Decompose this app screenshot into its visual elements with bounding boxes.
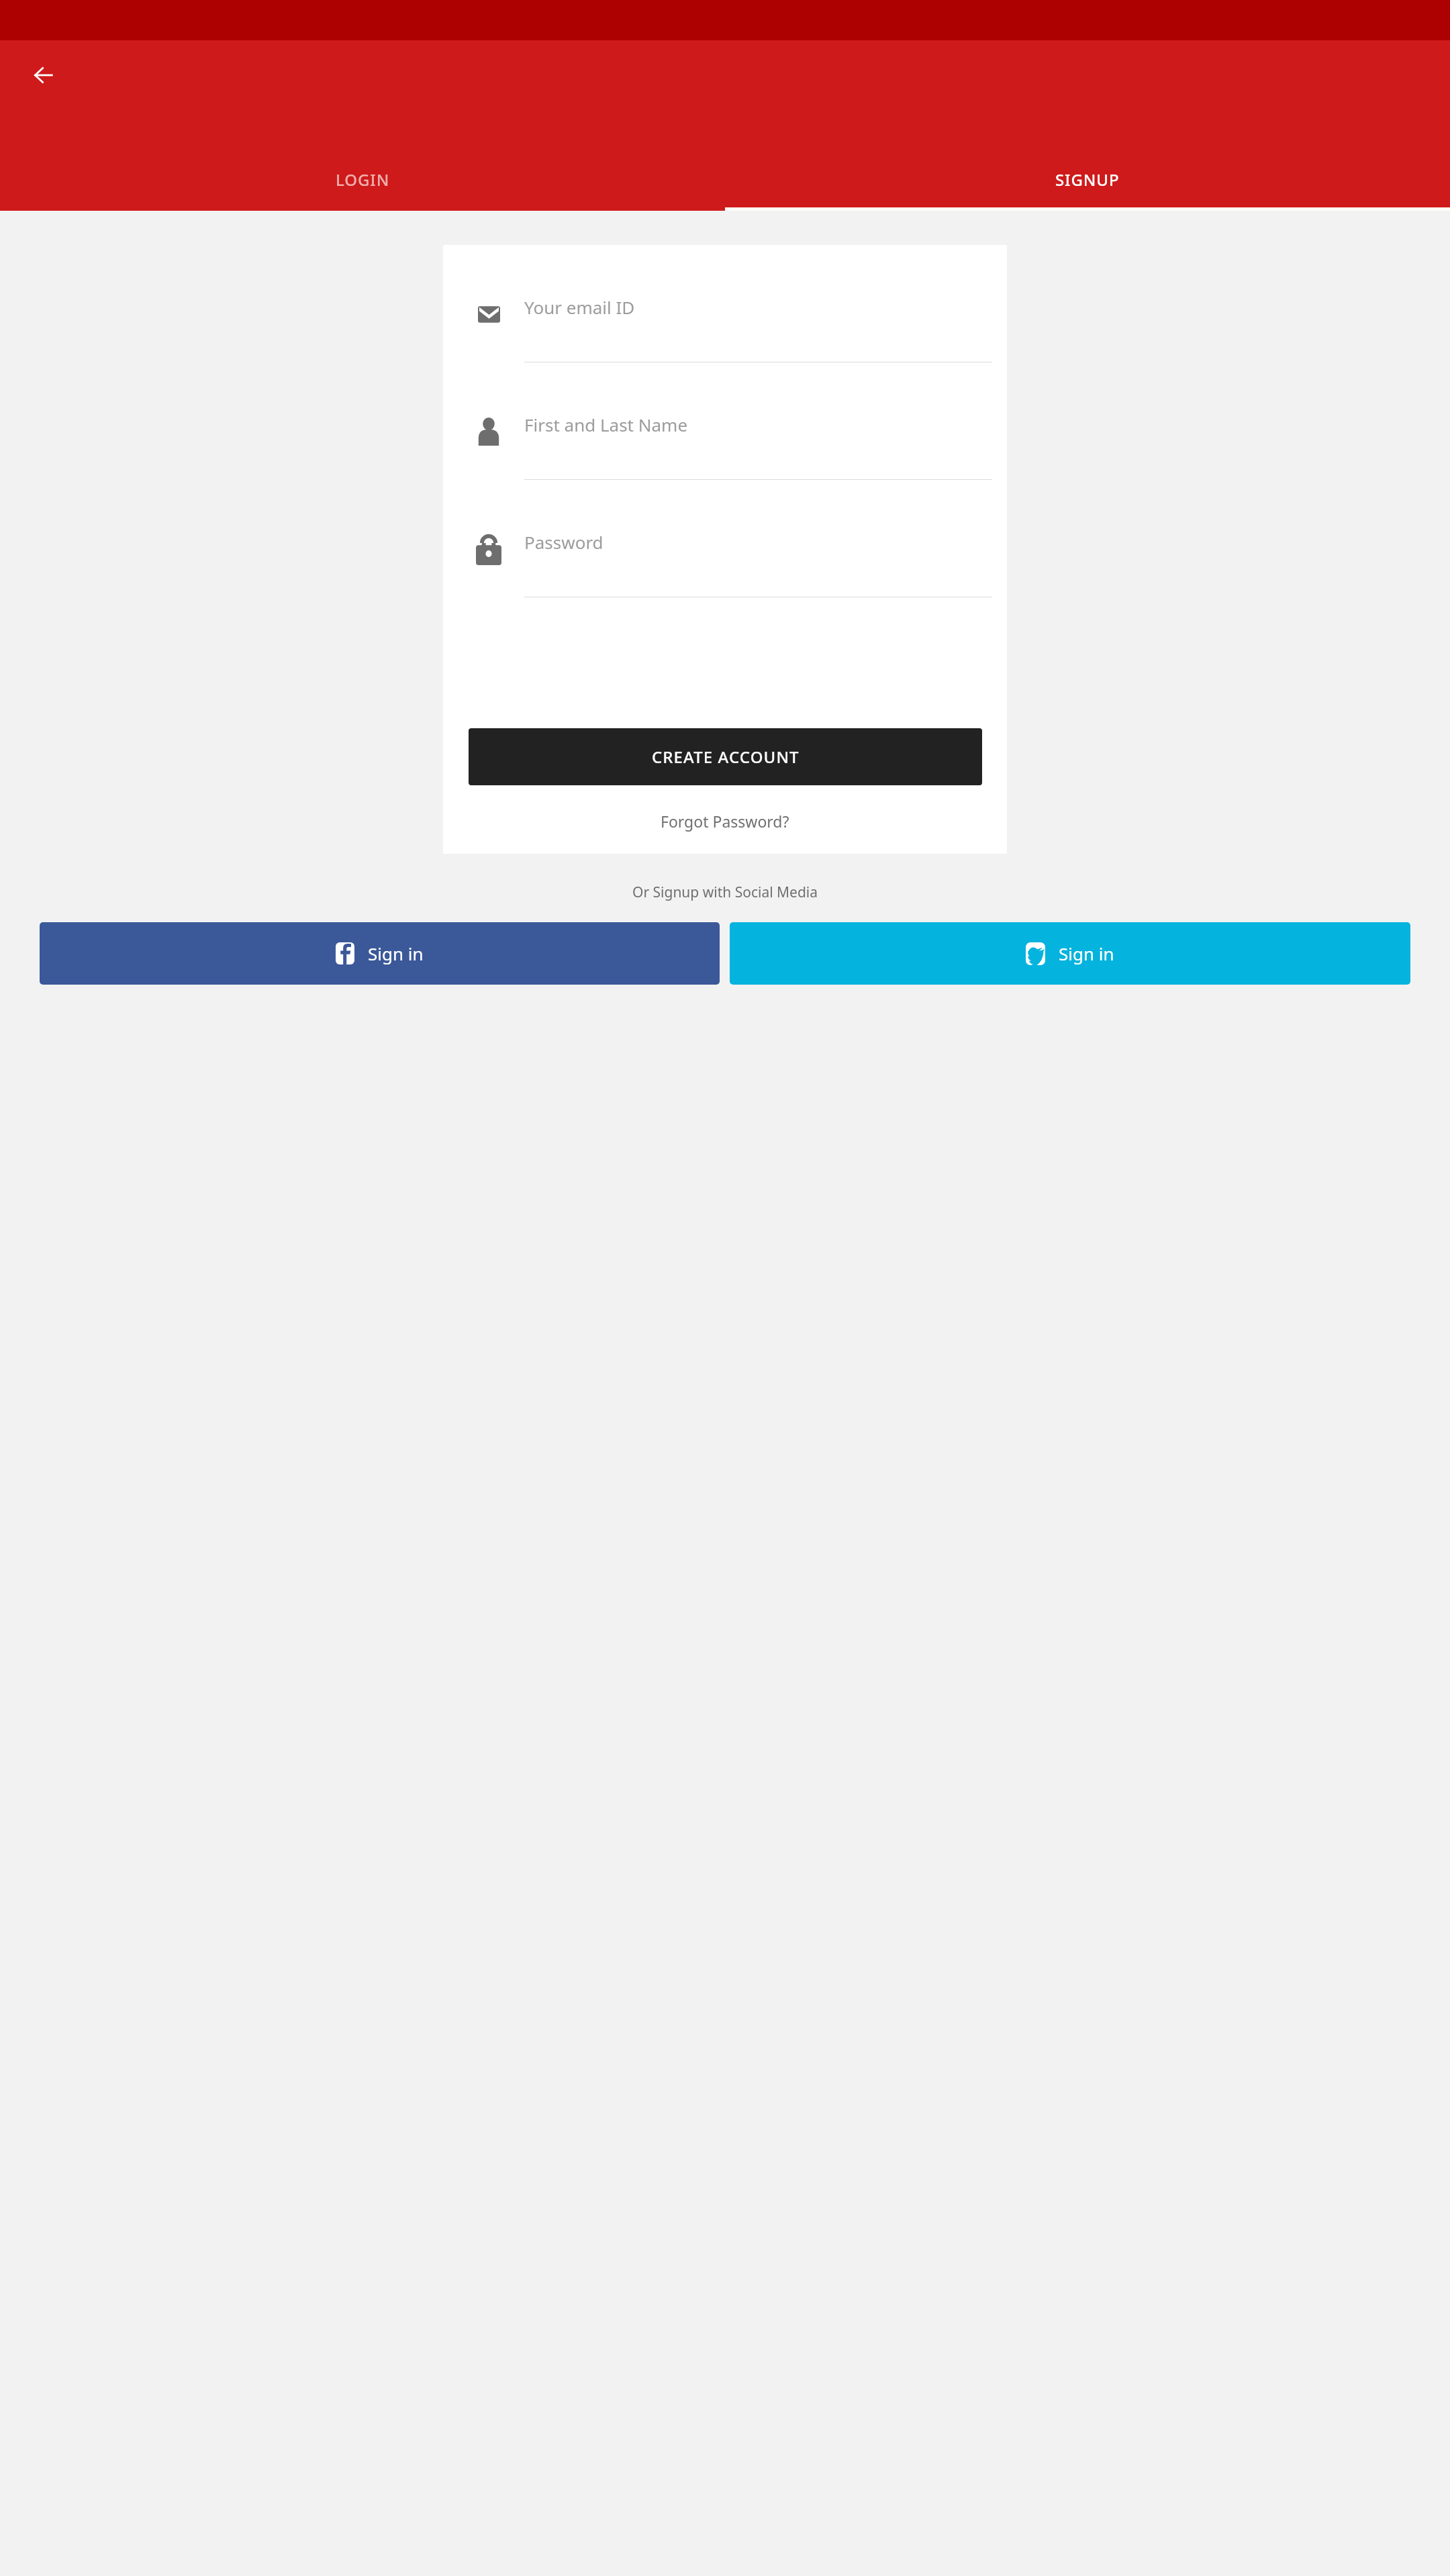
staticText: CREATE ACCOUNT [652, 746, 800, 768]
staticText: Password [524, 530, 603, 554]
button[interactable]: LOGIN [0, 148, 725, 211]
staticText: Your email ID [524, 295, 635, 319]
button[interactable]: Your email ID [443, 295, 1007, 362]
staticText: Forgot Password? [661, 811, 789, 832]
button[interactable]: CREATE ACCOUNT [469, 728, 982, 785]
staticText: LOGIN [336, 168, 390, 191]
staticText: Sign in [1059, 942, 1114, 965]
button[interactable]: SIGNUP [725, 148, 1450, 211]
button[interactable]: First and Last Name [443, 413, 1007, 480]
button[interactable]: Sign in with Twitter [730, 922, 1410, 985]
button[interactable]: Password [443, 530, 1007, 597]
staticText: SIGNUP [1055, 168, 1120, 191]
button[interactable]: Back [27, 58, 60, 92]
staticText: First and Last Name [524, 413, 688, 436]
button[interactable]: Forgot Password? [652, 807, 797, 836]
button[interactable]: Sign in with Facebook [40, 922, 720, 985]
staticText: Sign in [368, 942, 424, 965]
staticText: Or Signup with Social Media [632, 883, 818, 902]
